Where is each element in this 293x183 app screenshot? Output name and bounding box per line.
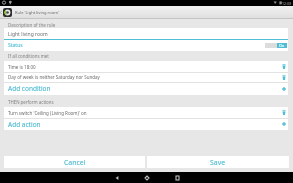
button[interactable]: Day of week is neither Saturday nor Sund… [4, 72, 288, 82]
staticText: If all conditions met [8, 53, 49, 59]
button[interactable]: Time is 18:00 [4, 61, 288, 72]
button[interactable]: Add [279, 118, 288, 130]
button[interactable]: Status [4, 40, 288, 51]
button[interactable]: Recent apps [162, 172, 192, 183]
button[interactable]: Back [102, 172, 132, 183]
staticText: Day of week is neither Saturday nor Sund… [8, 74, 100, 80]
staticText: 12:08 [282, 1, 292, 6]
button[interactable]: Add [279, 82, 288, 95]
staticText: Turn switch 'Ceiling (Living Room)' on [8, 110, 87, 116]
button[interactable]: Save [147, 156, 289, 168]
staticText: Cancel [64, 158, 86, 167]
button[interactable]: Add condition [4, 82, 288, 95]
button[interactable]: Navigate up [0, 6, 3, 19]
staticText: Description of the rule [8, 22, 56, 28]
button[interactable]: Turn switch 'Ceiling (Living Room)' on [4, 107, 288, 118]
staticText: Save [210, 158, 226, 167]
staticText: Rule 'Light living room' [15, 10, 59, 16]
staticText: Add condition [8, 84, 51, 93]
button[interactable]: Delete [279, 107, 288, 118]
button[interactable]: Delete [279, 61, 288, 72]
staticText: Light living room [8, 31, 48, 38]
button[interactable]: Home [132, 172, 162, 183]
button[interactable]: Cancel [4, 156, 145, 168]
staticText: Time is 18:00 [8, 64, 36, 70]
staticText: THEN perform actions [8, 99, 54, 105]
button[interactable]: Delete [279, 72, 288, 82]
button[interactable]: Add action [4, 118, 288, 130]
staticText: Status [8, 42, 23, 49]
staticText: Add action [8, 120, 41, 129]
staticText: On [279, 43, 285, 48]
button[interactable]: Light living room [4, 28, 288, 40]
